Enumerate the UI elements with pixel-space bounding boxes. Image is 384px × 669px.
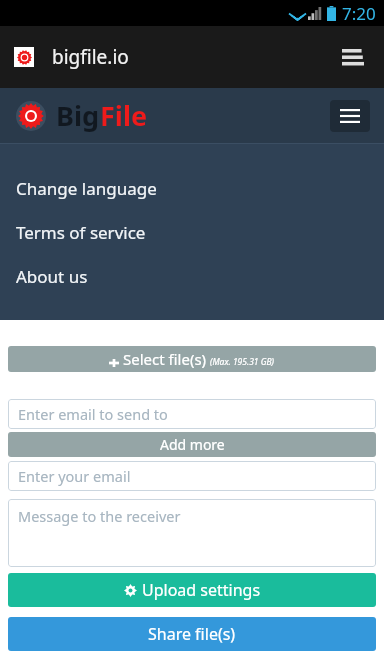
staticText: 7:20 <box>342 2 376 25</box>
staticText: Enter email to send to <box>18 404 168 424</box>
staticText: File <box>100 97 148 134</box>
staticText: Terms of service <box>16 221 146 244</box>
staticText: Enter your email <box>18 466 131 486</box>
staticText: Upload settings <box>142 579 261 601</box>
button[interactable]: Menu <box>330 100 370 132</box>
button[interactable]: Select file(s) <box>8 346 376 372</box>
staticText: Message to the receiver <box>18 506 181 526</box>
button[interactable]: Add more <box>8 432 376 457</box>
staticText: (Max. 195.31 GB) <box>210 356 275 368</box>
button[interactable]: About us <box>0 254 384 298</box>
staticText: Big <box>56 97 100 134</box>
button[interactable]: Change language <box>0 166 384 210</box>
staticText: Select file(s) <box>123 349 207 369</box>
button[interactable]: Enter email to send to <box>8 399 376 429</box>
button[interactable]: Terms of service <box>0 210 384 254</box>
staticText: Share file(s) <box>148 623 236 645</box>
button[interactable]: Upload settings <box>8 573 376 607</box>
button[interactable]: Share file(s) <box>8 617 376 651</box>
button[interactable]: Message to the receiver <box>8 499 376 567</box>
staticText: Add more <box>160 435 225 454</box>
button[interactable]: Tabs <box>336 40 370 74</box>
staticText: bigfile.io <box>52 44 129 70</box>
staticText: Change language <box>16 177 157 200</box>
staticText: About us <box>16 265 88 288</box>
button[interactable]: Enter your email <box>8 461 376 491</box>
